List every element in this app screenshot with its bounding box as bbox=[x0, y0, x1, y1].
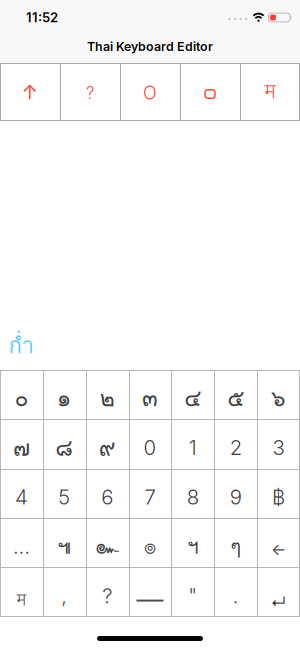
button[interactable]: 0 bbox=[129, 419, 171, 469]
staticText: . bbox=[233, 583, 239, 608]
button[interactable]: म bbox=[240, 63, 300, 121]
button[interactable]: ๑ bbox=[43, 370, 86, 419]
button[interactable]: . bbox=[214, 568, 257, 617]
staticText: म bbox=[16, 587, 26, 611]
staticText: … bbox=[13, 534, 30, 559]
button[interactable]: Delete bbox=[257, 518, 300, 568]
button[interactable]: ๕ bbox=[214, 370, 257, 419]
staticText: 9 bbox=[230, 485, 242, 509]
button[interactable]: ๐ bbox=[0, 370, 43, 419]
staticText: ๘ bbox=[55, 429, 73, 466]
staticText: ↵ bbox=[271, 593, 287, 612]
button[interactable]: 5 bbox=[43, 469, 86, 518]
button[interactable]: Return bbox=[257, 568, 300, 617]
staticText: ๓ bbox=[142, 380, 158, 416]
staticText: 4 bbox=[15, 485, 28, 509]
button[interactable]: ๆ bbox=[214, 518, 257, 568]
button[interactable]: ๓ bbox=[129, 370, 171, 419]
staticText: ฿ bbox=[272, 485, 285, 509]
button[interactable]: 3 bbox=[257, 419, 300, 469]
button[interactable]: ๙ bbox=[86, 419, 129, 469]
staticText: ก่ำ bbox=[8, 328, 33, 363]
staticText: 3 bbox=[273, 435, 285, 460]
staticText: ๆ bbox=[230, 530, 241, 563]
button[interactable]: 8 bbox=[171, 469, 214, 518]
button[interactable]: O bbox=[120, 63, 180, 121]
button[interactable]: ๖ bbox=[257, 370, 300, 419]
staticText: 8 bbox=[187, 485, 199, 509]
staticText: ๒ bbox=[100, 380, 115, 416]
staticText: ← bbox=[271, 540, 286, 559]
staticText: ๙ bbox=[99, 429, 116, 466]
button[interactable]: ? bbox=[86, 568, 129, 617]
button[interactable]: ฯ bbox=[171, 518, 214, 568]
staticText: 0 bbox=[143, 435, 156, 460]
button[interactable]: 2 bbox=[214, 419, 257, 469]
staticText: 1 bbox=[189, 435, 197, 460]
button[interactable]: ๔ bbox=[171, 370, 214, 419]
staticText: 5 bbox=[58, 485, 70, 509]
staticText: ๏ bbox=[144, 530, 156, 563]
staticText: O bbox=[143, 82, 157, 104]
staticText: ๑ bbox=[57, 380, 72, 416]
staticText: " bbox=[188, 583, 197, 608]
staticText: 11:52 bbox=[26, 10, 58, 25]
button[interactable]: ๒ bbox=[86, 370, 129, 419]
button[interactable]: ? bbox=[60, 63, 120, 121]
button[interactable]: , bbox=[43, 568, 86, 617]
staticText: 2 bbox=[230, 435, 242, 460]
button[interactable]: ๘ bbox=[43, 419, 86, 469]
button[interactable]: 4 bbox=[0, 469, 43, 518]
staticText: ? bbox=[86, 83, 94, 103]
staticText: 7 bbox=[144, 485, 155, 509]
staticText: ๗ bbox=[13, 429, 30, 466]
staticText: 6 bbox=[101, 485, 113, 509]
staticText: Thai Keyboard Editor bbox=[87, 39, 213, 54]
button[interactable]: ๛ bbox=[86, 518, 129, 568]
button[interactable]: … bbox=[0, 518, 43, 568]
staticText: ฯ bbox=[187, 530, 198, 563]
button[interactable]: ฿ bbox=[257, 469, 300, 518]
button[interactable]: 6 bbox=[86, 469, 129, 518]
staticText: ๚ bbox=[57, 530, 71, 563]
button[interactable]: " bbox=[171, 568, 214, 617]
staticText: ๐ bbox=[14, 380, 28, 416]
staticText: , bbox=[61, 583, 67, 608]
button[interactable]: 1 bbox=[171, 419, 214, 469]
button[interactable]: ๚ bbox=[43, 518, 86, 568]
button[interactable]: म bbox=[0, 568, 43, 617]
button[interactable]: ๗ bbox=[0, 419, 43, 469]
button[interactable]: ๏ bbox=[129, 518, 171, 568]
staticText: ๛ bbox=[95, 530, 119, 563]
button[interactable]: 9 bbox=[214, 469, 257, 518]
staticText: ? bbox=[102, 583, 112, 608]
button[interactable]: Space bbox=[129, 568, 171, 617]
button[interactable]: Shift bbox=[0, 63, 60, 121]
staticText: ๖ bbox=[271, 380, 286, 416]
staticText: ๕ bbox=[227, 380, 244, 416]
staticText: ๔ bbox=[184, 380, 201, 416]
button[interactable]: Rounded rectangle key bbox=[180, 63, 240, 121]
button[interactable]: 7 bbox=[129, 469, 171, 518]
staticText: म bbox=[264, 77, 275, 104]
staticText: ↑ bbox=[21, 80, 38, 104]
